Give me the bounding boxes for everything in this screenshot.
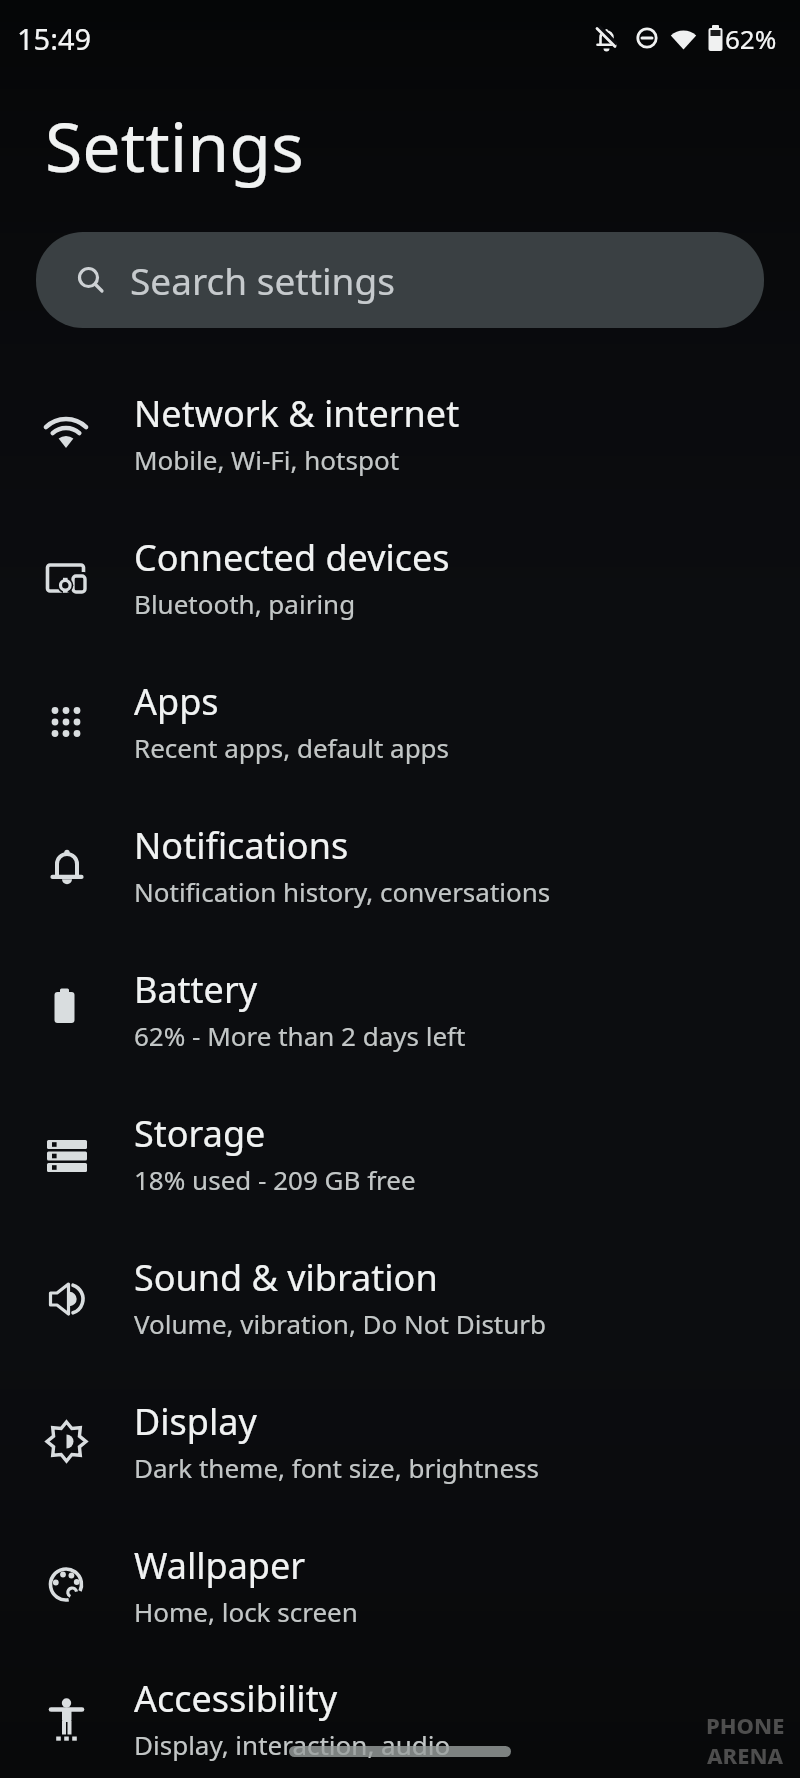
button[interactable]: Display	[0, 1369, 800, 1513]
staticText: 15:49	[17, 19, 92, 58]
staticText: ARENA	[707, 1740, 784, 1770]
staticText: 18% used - 209 GB free	[134, 1162, 416, 1197]
staticText: Network & internet	[134, 389, 460, 438]
staticText: Dark theme, font size, brightness	[134, 1450, 539, 1485]
staticText: Accessibility	[134, 1674, 338, 1723]
staticText: Settings	[45, 99, 304, 192]
staticText: 62% - More than 2 days left	[134, 1018, 466, 1053]
staticText: Storage	[134, 1109, 266, 1158]
staticText: PHONE	[706, 1710, 785, 1740]
staticText: Display	[134, 1397, 257, 1446]
staticText: Notification history, conversations	[134, 874, 551, 909]
staticText: Home, lock screen	[134, 1594, 358, 1629]
staticText: Connected devices	[134, 533, 450, 582]
staticText: Mobile, Wi-Fi, hotspot	[134, 442, 400, 477]
button[interactable]: Storage	[0, 1081, 800, 1225]
staticText: Notifications	[134, 821, 349, 870]
staticText: Recent apps, default apps	[134, 730, 450, 765]
staticText: Wallpaper	[134, 1541, 306, 1590]
staticText: 62%	[725, 21, 777, 56]
button[interactable]: Network & internet	[0, 361, 800, 505]
button[interactable]: Apps	[0, 649, 800, 793]
staticText: Bluetooth, pairing	[134, 586, 356, 621]
staticText: Volume, vibration, Do Not Disturb	[134, 1306, 547, 1341]
button[interactable]: Search settings	[36, 232, 764, 328]
button[interactable]: Notifications	[0, 793, 800, 937]
staticText: Sound & vibration	[134, 1253, 438, 1302]
staticText: Apps	[134, 677, 219, 726]
button[interactable]: Connected devices	[0, 505, 800, 649]
button[interactable]: Battery	[0, 937, 800, 1081]
button[interactable]: Wallpaper	[0, 1513, 800, 1657]
staticText: Search settings	[130, 255, 395, 305]
staticText: Battery	[134, 965, 258, 1014]
staticText: Display, interaction, audio	[134, 1727, 451, 1762]
button[interactable]: Accessibility	[0, 1657, 800, 1778]
button[interactable]: Sound & vibration	[0, 1225, 800, 1369]
